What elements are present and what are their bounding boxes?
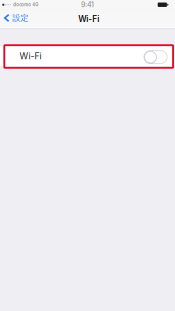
staticText: 設定	[13, 13, 29, 23]
staticText: Wi-Fi	[78, 14, 99, 24]
staticText: 4G	[32, 2, 38, 7]
button[interactable]: 設定	[0, 9, 34, 26]
staticText: 9:41	[81, 1, 94, 9]
staticText: docomo	[13, 2, 31, 7]
button[interactable]: Wi-Fi	[0, 46, 175, 66]
staticText: Wi-Fi	[20, 51, 42, 61]
